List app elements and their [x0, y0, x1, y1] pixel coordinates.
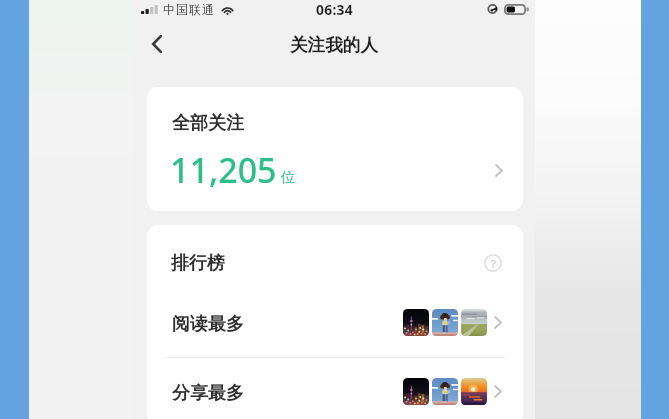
- staticText: 阅读最多: [172, 313, 244, 336]
- button[interactable]: 全部关注: [147, 87, 523, 211]
- button[interactable]: Help: [479, 249, 507, 277]
- button[interactable]: Back: [138, 22, 176, 66]
- button[interactable]: 分享最多: [147, 357, 523, 419]
- staticText: 分享最多: [172, 382, 244, 405]
- staticText: 关注我的人: [290, 34, 378, 56]
- staticText: 06:34: [316, 0, 353, 19]
- button[interactable]: 阅读最多: [147, 288, 523, 357]
- staticText: 全部关注: [172, 112, 244, 135]
- staticText: ?: [491, 256, 496, 271]
- staticText: 11,205: [170, 147, 277, 193]
- staticText: 中国联通: [163, 2, 216, 17]
- staticText: 位: [281, 168, 296, 186]
- staticText: 排行榜: [171, 252, 225, 275]
